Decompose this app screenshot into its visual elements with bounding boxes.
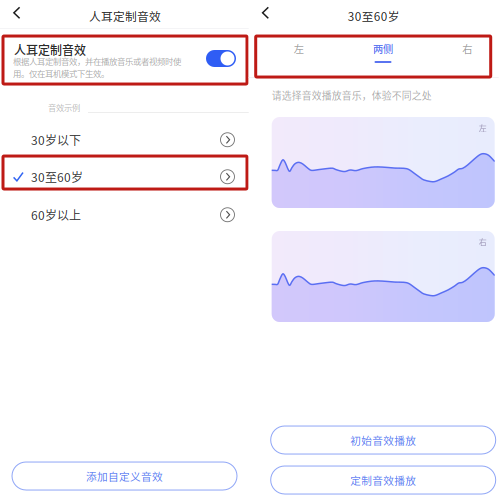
staticText: 60岁以上 [31, 206, 81, 223]
button[interactable]: Back [249, 0, 280, 27]
staticText: 添加自定义音效 [86, 468, 163, 484]
staticText: 右 [479, 236, 487, 248]
button[interactable]: 60岁以上 [0, 196, 250, 233]
button[interactable]: 左 [257, 30, 341, 71]
staticText: 两侧 [373, 41, 393, 56]
button[interactable]: 30岁以下 [0, 121, 250, 158]
staticText: 左 [479, 122, 487, 134]
staticText: 30至60岁 [31, 168, 83, 185]
staticText: 请选择音效播放音乐，体验不同之处 [272, 88, 432, 102]
staticText: 音效示例 [48, 101, 80, 113]
button[interactable]: Back [0, 0, 31, 27]
button[interactable]: 30至60岁 [0, 158, 250, 195]
button[interactable]: 初始音效播放 [271, 426, 496, 454]
staticText: 定制音效播放 [350, 472, 416, 488]
staticText: 左 [294, 41, 304, 56]
staticText: 人耳定制音效 [14, 41, 86, 58]
button[interactable]: 定制音效播放 [271, 466, 496, 494]
button[interactable]: 两侧 [341, 30, 425, 71]
staticText: 30至60岁 [348, 7, 400, 24]
button[interactable]: 右 [425, 30, 500, 71]
button[interactable]: 添加自定义音效 [12, 462, 237, 490]
staticText: 人耳定制音效 [89, 7, 161, 24]
staticText: 右 [462, 41, 472, 56]
staticText: 根据人耳定制音效，并在播放音乐或者视频时使用。仅在耳机模式下生效。 [13, 55, 181, 79]
staticText: 30岁以下 [31, 131, 81, 148]
staticText: 初始音效播放 [350, 432, 416, 448]
